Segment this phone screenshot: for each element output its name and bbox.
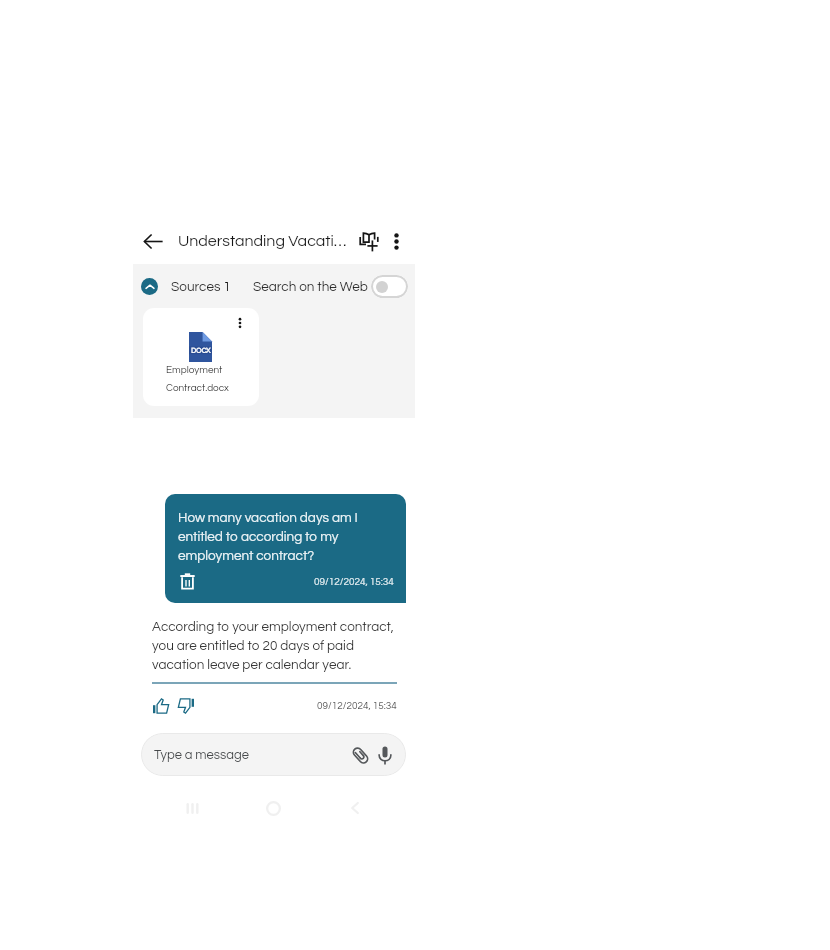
button[interactable]: How many vacation days am I entitled to … — [165, 494, 406, 603]
button[interactable]: File options — [143, 308, 259, 406]
staticText: Employment Contract.docx — [166, 365, 259, 393]
staticText: Search on the Web — [253, 280, 368, 294]
button[interactable]: Voice input — [374, 744, 396, 766]
staticText: Understanding Vacati… — [178, 233, 347, 249]
staticText: Sources 1 — [171, 280, 231, 294]
staticText: Type a message — [154, 748, 249, 761]
button[interactable]: File options — [232, 315, 248, 331]
staticText: 09/12/2024, 15:34 — [314, 577, 394, 587]
button[interactable]: Thumbs up — [152, 696, 171, 715]
button[interactable]: Type a message — [141, 733, 406, 776]
button[interactable]: Delete message — [178, 572, 197, 591]
button[interactable]: Collapse sources — [141, 278, 158, 295]
staticText: According to your employment contract, y… — [152, 620, 397, 672]
button[interactable]: Back — [133, 221, 173, 261]
button[interactable]: Home — [257, 793, 289, 823]
staticText: DOCX — [191, 347, 211, 354]
button[interactable]: Recent apps — [176, 793, 208, 823]
button[interactable]: Toggle search on the web — [371, 275, 408, 298]
button[interactable]: Add to library — [355, 227, 383, 255]
staticText: 09/12/2024, 15:34 — [317, 701, 397, 711]
button[interactable]: Thumbs down — [176, 696, 195, 715]
button[interactable]: Attach file — [349, 744, 371, 766]
staticText: How many vacation days am I entitled to … — [178, 511, 394, 563]
button[interactable]: More options — [383, 228, 409, 254]
